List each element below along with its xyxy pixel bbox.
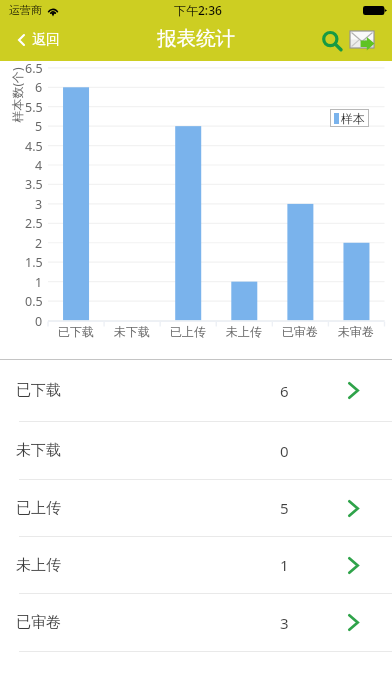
button[interactable]: 返回	[0, 26, 70, 54]
staticText: 未审卷	[338, 324, 374, 339]
staticText: 未下载	[16, 441, 61, 460]
staticText: 5	[35, 118, 43, 135]
staticText: 已上传	[16, 499, 61, 518]
staticText: 下午2:36	[174, 2, 222, 18]
button[interactable]: 已审卷	[0, 594, 392, 651]
staticText: 样本数(个)	[9, 55, 25, 135]
button[interactable]: 已下载	[0, 360, 392, 421]
staticText: 5.5	[25, 99, 43, 116]
staticText: 0	[35, 313, 43, 330]
staticText: 3	[280, 613, 289, 633]
staticText: 已下载	[16, 381, 61, 400]
button[interactable]: 未下载	[0, 422, 392, 479]
staticText: 6	[280, 381, 289, 401]
staticText: 已上传	[170, 324, 206, 339]
staticText: 4	[35, 157, 43, 174]
staticText: 2.5	[25, 215, 43, 232]
staticText: 0.5	[25, 293, 43, 310]
staticText: 未上传	[16, 556, 61, 575]
staticText: 6	[35, 79, 43, 96]
staticText: 已审卷	[282, 324, 318, 339]
staticText: 3	[35, 196, 43, 213]
staticText: 已下载	[58, 324, 94, 339]
staticText: 未上传	[226, 324, 262, 339]
staticText: 6.5	[25, 60, 43, 77]
staticText: 1	[280, 555, 289, 575]
staticText: 3.5	[25, 176, 43, 193]
staticText: 返回	[32, 31, 60, 49]
staticText: 5	[280, 498, 289, 518]
staticText: 4.5	[25, 138, 43, 155]
staticText: 2	[35, 235, 43, 252]
staticText: 已审卷	[16, 613, 61, 632]
staticText: 样本	[341, 111, 365, 126]
staticText: 1.5	[25, 254, 43, 271]
button[interactable]: 未上传	[0, 537, 392, 593]
button[interactable]: Mail	[346, 27, 376, 51]
staticText: 0	[280, 441, 289, 461]
button[interactable]: 已上传	[0, 480, 392, 536]
staticText: 运营商	[9, 3, 42, 17]
button[interactable]: Search	[318, 27, 343, 52]
staticText: 未下载	[114, 324, 150, 339]
staticText: 报表统计	[157, 26, 235, 51]
staticText: 1	[35, 274, 43, 291]
